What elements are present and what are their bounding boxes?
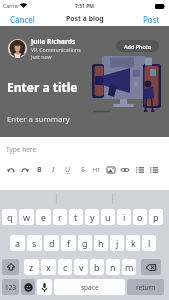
button[interactable]: f [61, 235, 76, 251]
staticText: z [29, 261, 34, 273]
staticText: k [131, 237, 136, 249]
staticText: 123 [5, 283, 17, 292]
button[interactable]: t [69, 209, 83, 225]
staticText: H1 [93, 166, 101, 173]
button[interactable]: n [106, 259, 120, 275]
button[interactable]: x [41, 259, 56, 275]
button[interactable]: Backspace [141, 259, 161, 275]
button[interactable]: b [90, 259, 104, 275]
staticText: s [32, 237, 37, 249]
button[interactable]: c [58, 259, 72, 275]
button[interactable]: k [126, 235, 140, 251]
button[interactable]: l [142, 235, 156, 251]
staticText: c [63, 261, 68, 273]
button[interactable]: j [110, 235, 124, 251]
staticText: t [74, 211, 78, 223]
staticText: u [105, 211, 111, 223]
staticText: Just now [31, 53, 52, 60]
staticText: 7:51 PM [75, 3, 94, 10]
button[interactable]: Redo [18, 163, 31, 176]
staticText: Post [143, 14, 160, 24]
staticText: Cancel [10, 14, 35, 24]
staticText: x [46, 261, 51, 273]
staticText: o [137, 211, 143, 223]
staticText: e [41, 211, 47, 223]
button[interactable]: z [24, 259, 39, 275]
button[interactable]: Emoji [21, 279, 35, 295]
button[interactable]: q [2, 209, 17, 225]
button[interactable]: S [76, 163, 89, 176]
button[interactable]: y [85, 209, 99, 225]
staticText: y [90, 211, 95, 223]
button[interactable]: B [33, 163, 46, 176]
button[interactable]: d [44, 235, 59, 251]
button[interactable]: H1 [90, 163, 103, 176]
button[interactable]: e [36, 209, 51, 225]
button[interactable]: 123 [2, 279, 19, 295]
staticText: g [82, 237, 88, 249]
staticText: Julia Richards [31, 37, 76, 46]
button[interactable]: v [74, 259, 88, 275]
button[interactable]: w [19, 209, 34, 225]
button[interactable]: h [94, 235, 108, 251]
staticText: Post a blog [66, 14, 104, 24]
button[interactable]: Numbered list [147, 163, 160, 176]
button[interactable]: m [122, 259, 136, 275]
button[interactable]: a [10, 235, 25, 251]
button[interactable]: Dictate [37, 279, 52, 295]
button[interactable]: r [53, 209, 67, 225]
button[interactable]: Cancel [0, 12, 43, 26]
staticText: space [81, 283, 99, 292]
button[interactable]: Shift [2, 259, 19, 275]
staticText: S [81, 165, 85, 175]
button[interactable]: o [133, 209, 147, 225]
staticText: Add Photo [124, 43, 152, 50]
staticText: h [98, 237, 104, 249]
staticText: Enter a summary [7, 114, 70, 125]
button[interactable]: Post [135, 12, 169, 26]
button[interactable]: g [78, 235, 92, 251]
button[interactable]: u [101, 209, 115, 225]
staticText: B [37, 165, 42, 175]
staticText: U [65, 165, 71, 175]
staticText: I [52, 165, 55, 175]
staticText: b [94, 261, 100, 273]
button[interactable]: Add Photo [116, 40, 159, 52]
staticText: q [7, 211, 13, 223]
button[interactable]: p [149, 209, 163, 225]
button[interactable]: Insert link [118, 163, 131, 176]
staticText: Enter a title [7, 79, 78, 95]
staticText: Carrier [3, 3, 20, 10]
staticText: v [79, 261, 84, 273]
button[interactable]: return [127, 279, 164, 295]
staticText: m [125, 261, 134, 273]
staticText: a [15, 237, 21, 249]
button[interactable]: space [54, 279, 125, 295]
staticText: j [116, 237, 119, 249]
staticText: return [136, 283, 156, 292]
staticText: d [49, 237, 55, 249]
staticText: Type here [6, 145, 37, 154]
staticText: i [123, 211, 126, 223]
staticText: f [67, 237, 71, 249]
button[interactable]: Undo [4, 163, 17, 176]
staticText: w [23, 211, 31, 223]
staticText: n [110, 261, 116, 273]
staticText: r [58, 211, 62, 223]
button[interactable]: i [117, 209, 131, 225]
staticText: VP, Communications [31, 46, 81, 53]
staticText: p [153, 211, 159, 223]
button[interactable]: Bullet list [133, 163, 146, 176]
button[interactable]: I [47, 163, 60, 176]
button[interactable]: s [27, 235, 42, 251]
button[interactable]: Insert image [104, 163, 117, 176]
button[interactable]: U [61, 163, 74, 176]
staticText: l [148, 237, 151, 249]
